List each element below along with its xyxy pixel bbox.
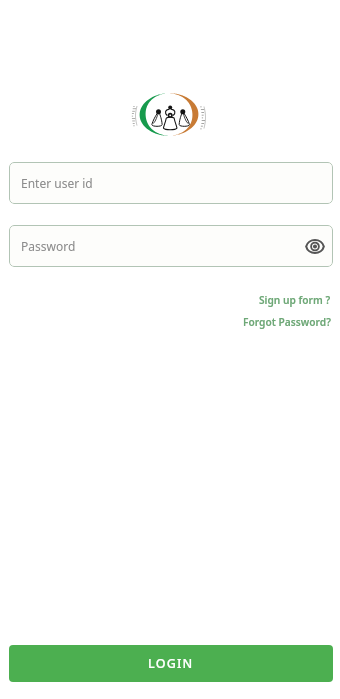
staticText: Sign up form ? bbox=[259, 293, 331, 307]
button[interactable]: Password bbox=[9, 225, 333, 267]
staticText: Enter user id bbox=[21, 175, 93, 191]
staticText: LOGIN bbox=[148, 655, 194, 672]
button[interactable]: Enter user id bbox=[9, 162, 333, 204]
button[interactable]: Forgot Password? bbox=[243, 315, 331, 329]
staticText: Forgot Password? bbox=[243, 315, 331, 329]
button[interactable]: LOGIN bbox=[9, 645, 333, 682]
button[interactable]: Show password bbox=[302, 233, 328, 259]
button[interactable]: Sign up form ? bbox=[259, 293, 331, 307]
staticText: Password bbox=[21, 238, 76, 254]
